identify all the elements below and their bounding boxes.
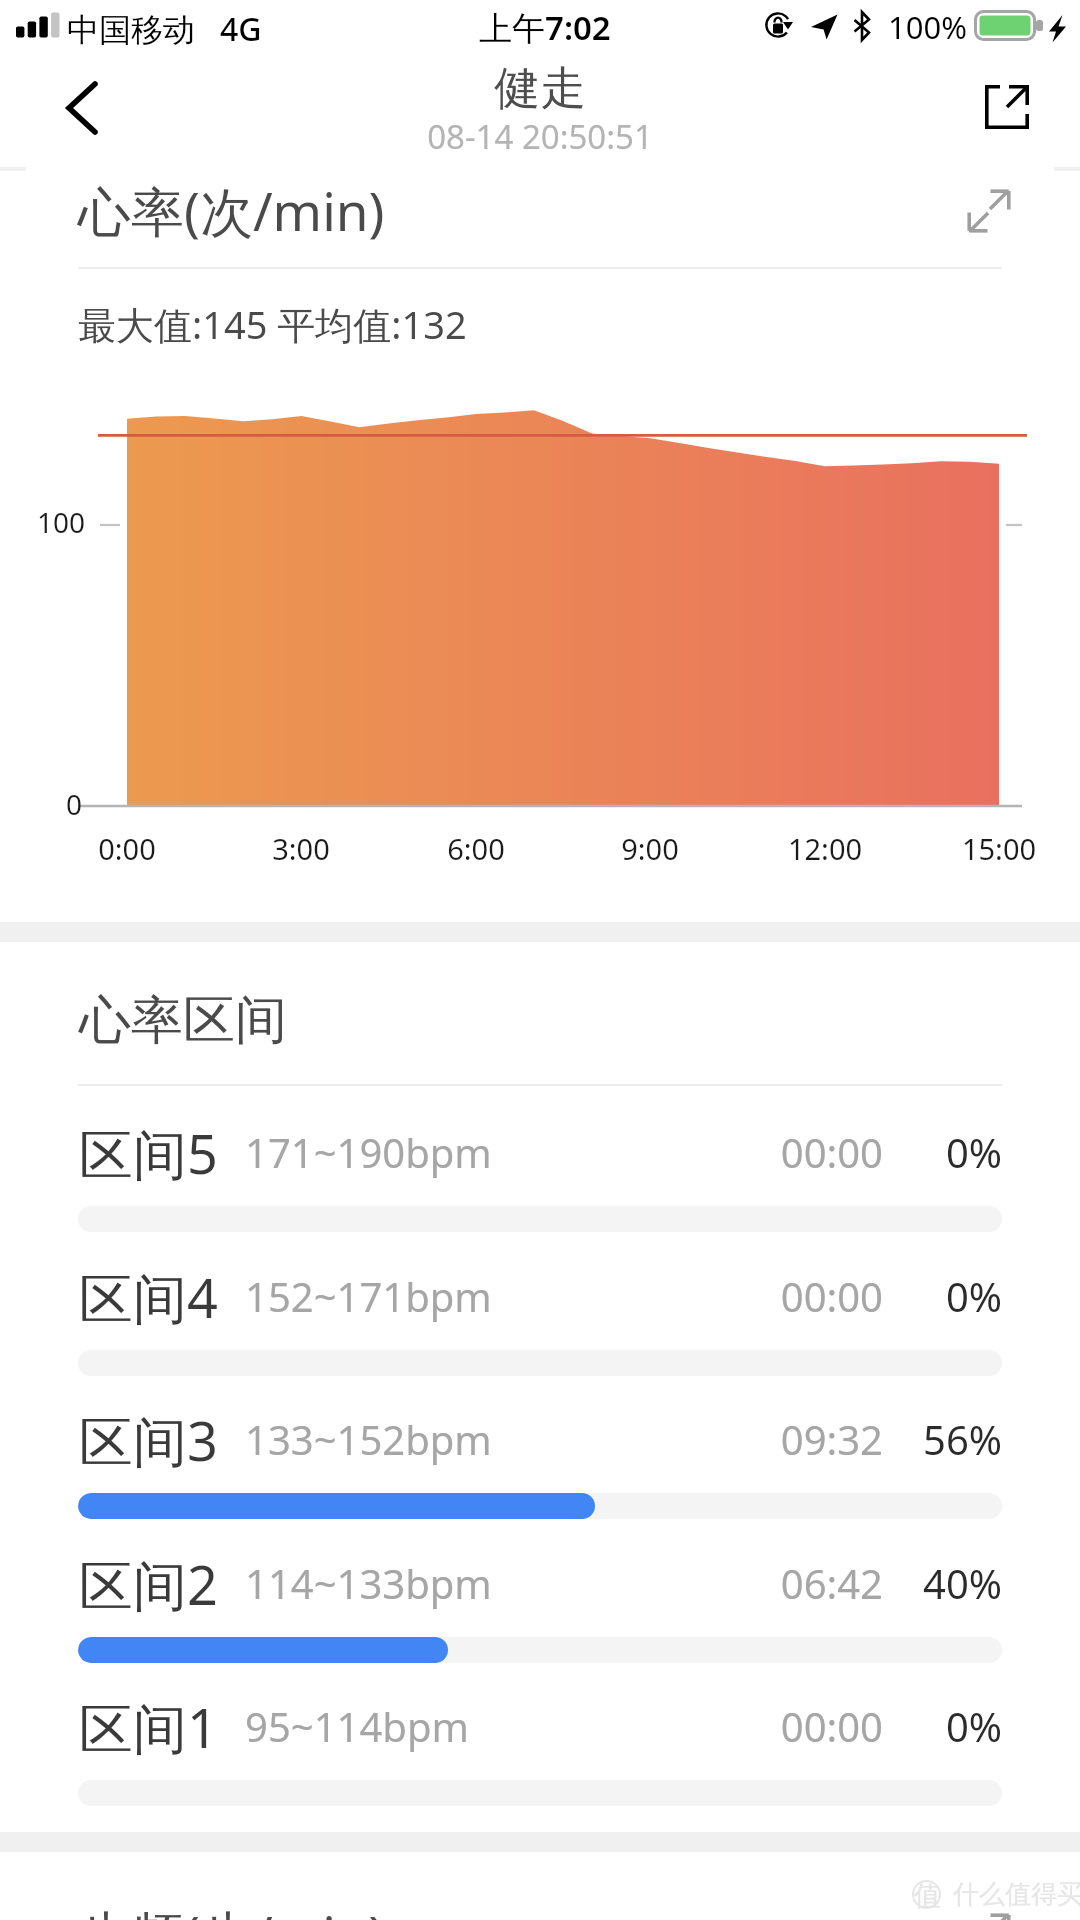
staticText: 95~114bpm (245, 1699, 469, 1753)
button[interactable]: Share (972, 72, 1042, 142)
staticText: 值 (914, 1879, 941, 1913)
staticText: 114~133bpm (245, 1556, 492, 1610)
staticText: 133~152bpm (245, 1412, 492, 1466)
staticText: 0% (820, 1699, 1002, 1753)
staticText: 中国移动 4G (67, 7, 262, 51)
button[interactable]: 区间1 (0, 1686, 1080, 1829)
button[interactable]: 区间4 (0, 1256, 1080, 1399)
staticText: 00:00 (700, 1125, 883, 1179)
staticText: 12:00 (755, 829, 895, 868)
staticText: 3:00 (231, 829, 371, 868)
staticText: 0% (820, 1269, 1002, 1323)
staticText: 区间4 (79, 1260, 218, 1334)
staticText: 40% (820, 1556, 1002, 1610)
staticText: 区间2 (79, 1547, 218, 1621)
button[interactable]: Expand step cadence chart (958, 1904, 1020, 1920)
staticText: 心率区间 (79, 988, 287, 1054)
staticText: 56% (820, 1412, 1002, 1466)
button[interactable]: Back (46, 73, 116, 143)
staticText: 100% (888, 6, 967, 48)
staticText: 0:00 (57, 829, 197, 868)
staticText: 区间1 (79, 1690, 218, 1764)
staticText: 9:00 (580, 829, 720, 868)
staticText: 00:00 (700, 1269, 883, 1323)
staticText: 09:32 (700, 1412, 883, 1466)
staticText: 0% (820, 1125, 1002, 1179)
staticText: 6:00 (406, 829, 546, 868)
staticText: 什么值得买 (953, 1878, 1080, 1911)
staticText: 上午7:02 (479, 5, 611, 50)
staticText: 健走 (0, 60, 1080, 118)
button[interactable]: 区间2 (0, 1543, 1080, 1686)
button[interactable]: 区间5 (0, 1112, 1080, 1255)
button[interactable]: Expand chart (958, 180, 1020, 242)
staticText: 步频(步/min) (78, 1898, 385, 1920)
staticText: 0 (66, 785, 83, 823)
staticText: 152~171bpm (245, 1269, 492, 1323)
staticText: 区间5 (79, 1116, 218, 1190)
staticText: 区间3 (79, 1403, 218, 1477)
staticText: 最大值:145 平均值:132 (78, 298, 467, 350)
staticText: 心率(次/min) (78, 174, 385, 246)
staticText: 00:00 (700, 1699, 883, 1753)
staticText: 171~190bpm (245, 1125, 492, 1179)
staticText: 15:00 (929, 829, 1069, 868)
staticText: 08-14 20:50:51 (0, 114, 1080, 159)
staticText: 100 (37, 503, 86, 541)
button[interactable]: 区间3 (0, 1399, 1080, 1542)
staticText: 06:42 (700, 1556, 883, 1610)
